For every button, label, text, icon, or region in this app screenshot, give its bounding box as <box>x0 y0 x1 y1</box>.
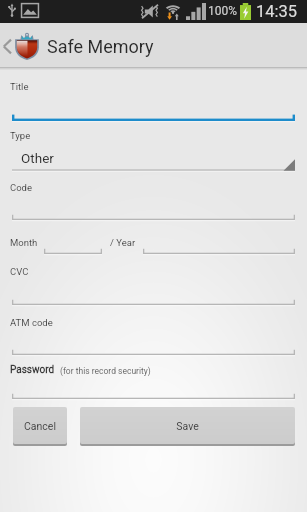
button[interactable]: Save <box>80 407 295 444</box>
staticText: Type <box>10 130 31 141</box>
staticText: Code <box>10 182 32 193</box>
button[interactable] <box>12 347 295 357</box>
button[interactable] <box>44 246 102 256</box>
staticText: CVC <box>10 266 29 277</box>
staticText: Save <box>176 420 199 432</box>
button[interactable] <box>12 212 295 222</box>
button[interactable]: Cancel <box>13 407 67 444</box>
staticText: Cancel <box>24 420 56 432</box>
staticText: Safe Memory <box>47 36 154 57</box>
staticText: Title <box>10 81 29 92</box>
staticText: (for this record security) <box>60 366 151 376</box>
button[interactable]: Navigate up <box>0 27 43 66</box>
staticText: ATM code <box>10 317 53 328</box>
staticText: Month <box>10 237 38 248</box>
button[interactable]: Other <box>12 147 295 172</box>
staticText: Password <box>10 364 55 376</box>
staticText: / Year <box>110 237 136 248</box>
button[interactable] <box>12 297 295 307</box>
staticText: 100% <box>208 4 238 18</box>
staticText: Other <box>21 150 54 166</box>
button[interactable] <box>143 246 295 256</box>
button[interactable] <box>12 113 295 123</box>
button[interactable] <box>12 391 295 401</box>
staticText: 14:35 <box>256 2 298 21</box>
